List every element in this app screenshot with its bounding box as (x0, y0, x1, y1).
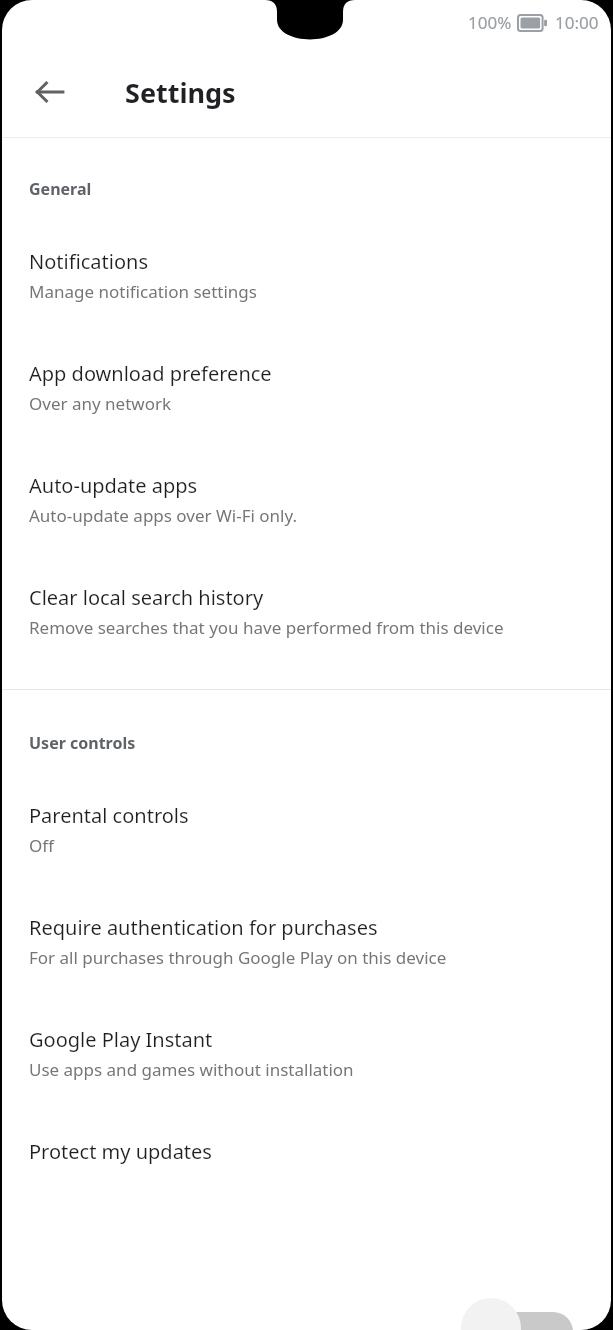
button[interactable]: Protect my updates (2, 1138, 611, 1165)
staticText: Off (29, 834, 54, 857)
staticText: User controls (29, 732, 136, 754)
button[interactable]: App download preference (2, 360, 611, 415)
staticText: Auto-update apps (29, 472, 198, 499)
staticText: Settings (125, 74, 236, 111)
button[interactable]: Google Play Instant (2, 1026, 611, 1081)
staticText: Require authentication for purchases (29, 914, 378, 941)
staticText: Notifications (29, 248, 148, 275)
staticText: Parental controls (29, 802, 189, 829)
button[interactable]: Clear local search history (2, 584, 611, 639)
staticText: Google Play Instant (29, 1026, 213, 1053)
button[interactable]: Auto-update apps (2, 472, 611, 527)
staticText: Remove searches that you have performed … (29, 616, 504, 639)
button[interactable]: Notifications (2, 248, 611, 303)
staticText: General (29, 178, 92, 200)
staticText: For all purchases through Google Play on… (29, 946, 447, 969)
staticText: 100% (468, 11, 512, 34)
staticText: App download preference (29, 360, 272, 387)
staticText: Over any network (29, 392, 172, 415)
staticText: Protect my updates (29, 1138, 212, 1165)
button[interactable]: Back (22, 64, 78, 120)
button[interactable]: Parental controls (2, 802, 611, 857)
staticText: Clear local search history (29, 584, 264, 611)
button[interactable]: Require authentication for purchases (2, 914, 611, 969)
staticText: 10:00 (555, 11, 599, 34)
staticText: Manage notification settings (29, 280, 257, 303)
staticText: Use apps and games without installation (29, 1058, 354, 1081)
staticText: Auto-update apps over Wi-Fi only. (29, 504, 298, 527)
